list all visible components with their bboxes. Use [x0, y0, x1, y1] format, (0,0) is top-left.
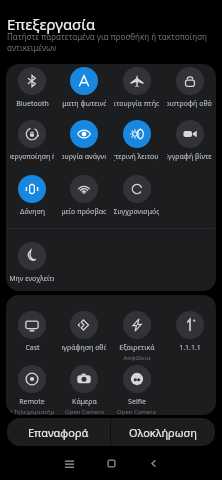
staticText: Δόνηση: [20, 207, 45, 217]
button[interactable]: Εξαιρετικά: [110, 311, 163, 362]
button[interactable]: 1.1.1.1: [163, 311, 216, 353]
staticText: Λειτουργία ανάγνωσης: [62, 152, 106, 162]
button[interactable]: Back: [142, 452, 164, 474]
button[interactable]: Λειτουργία πτήσης: [110, 67, 163, 109]
staticText: Επεξεργασία: [7, 14, 96, 34]
button[interactable]: Απενεργοποίηση ήχου: [6, 120, 58, 162]
button[interactable]: Σημείο πρόσβασης: [58, 175, 110, 217]
staticText: Open Camera: [65, 408, 104, 415]
staticText: Bluetooth: [16, 99, 49, 109]
button[interactable]: Recent apps: [58, 452, 80, 474]
button[interactable]: Κάμερα: [58, 365, 110, 415]
staticText: Σημείο πρόσβασης: [62, 207, 106, 217]
button[interactable]: Δόνηση: [6, 175, 58, 217]
staticText: Εξαιρετικά: [119, 343, 155, 353]
button[interactable]: Cast: [6, 311, 58, 353]
button[interactable]: Λειτουργία ανάγνωσης: [58, 120, 110, 162]
staticText: Ολοκλήρωση: [129, 425, 197, 440]
staticText: Επαναφορά: [28, 425, 89, 440]
button[interactable]: Ολοκλήρωση: [111, 418, 215, 446]
staticText: Πατήστε παρατεταμένα για προσθήκη ή τακτ…: [7, 31, 213, 54]
staticText: Κάμερα: [72, 397, 97, 407]
button[interactable]: Συγχρονισμός: [110, 175, 163, 217]
button[interactable]: Remote: [6, 365, 58, 415]
staticText: Μην ενοχλείτε: [10, 274, 54, 284]
staticText: Εγγραφή βίντεο: [167, 152, 212, 162]
staticText: Selfie: [128, 397, 146, 407]
staticText: Ασφάλεια: [123, 354, 151, 362]
button[interactable]: Εγγραφή βίντεο: [163, 120, 216, 162]
staticText: Αυτόματη φωτεινότητα: [62, 99, 106, 109]
staticText: Λειτουργία πτήσης: [114, 99, 159, 109]
staticText: Νυχτερινή λειτουργία: [114, 152, 159, 162]
staticText: Mi Τηλεχειριστήριο: [10, 408, 54, 415]
staticText: 1.1.1.1: [179, 343, 201, 353]
button[interactable]: Bluetooth: [6, 67, 58, 109]
staticText: Cast: [25, 343, 40, 353]
button[interactable]: Περιστροφή οθόνης: [163, 67, 216, 109]
button[interactable]: Αυτόματη φωτεινότητα: [58, 67, 110, 109]
staticText: Περιστροφή οθόνης: [167, 99, 212, 109]
staticText: Απενεργοποίηση ήχου: [10, 152, 54, 162]
button[interactable]: Selfie: [110, 365, 163, 415]
button[interactable]: Επαναφορά: [7, 418, 110, 446]
button[interactable]: Μην ενοχλείτε: [6, 242, 58, 284]
staticText: Ηχογράφηση οθόνης: [62, 343, 106, 353]
button[interactable]: Home: [100, 452, 122, 474]
staticText: Συγχρονισμός: [114, 207, 159, 217]
button[interactable]: Νυχτερινή λειτουργία: [110, 120, 163, 162]
staticText: Remote: [19, 397, 45, 407]
staticText: Open Camera: [117, 408, 156, 415]
button[interactable]: Ηχογράφηση οθόνης: [58, 311, 110, 353]
